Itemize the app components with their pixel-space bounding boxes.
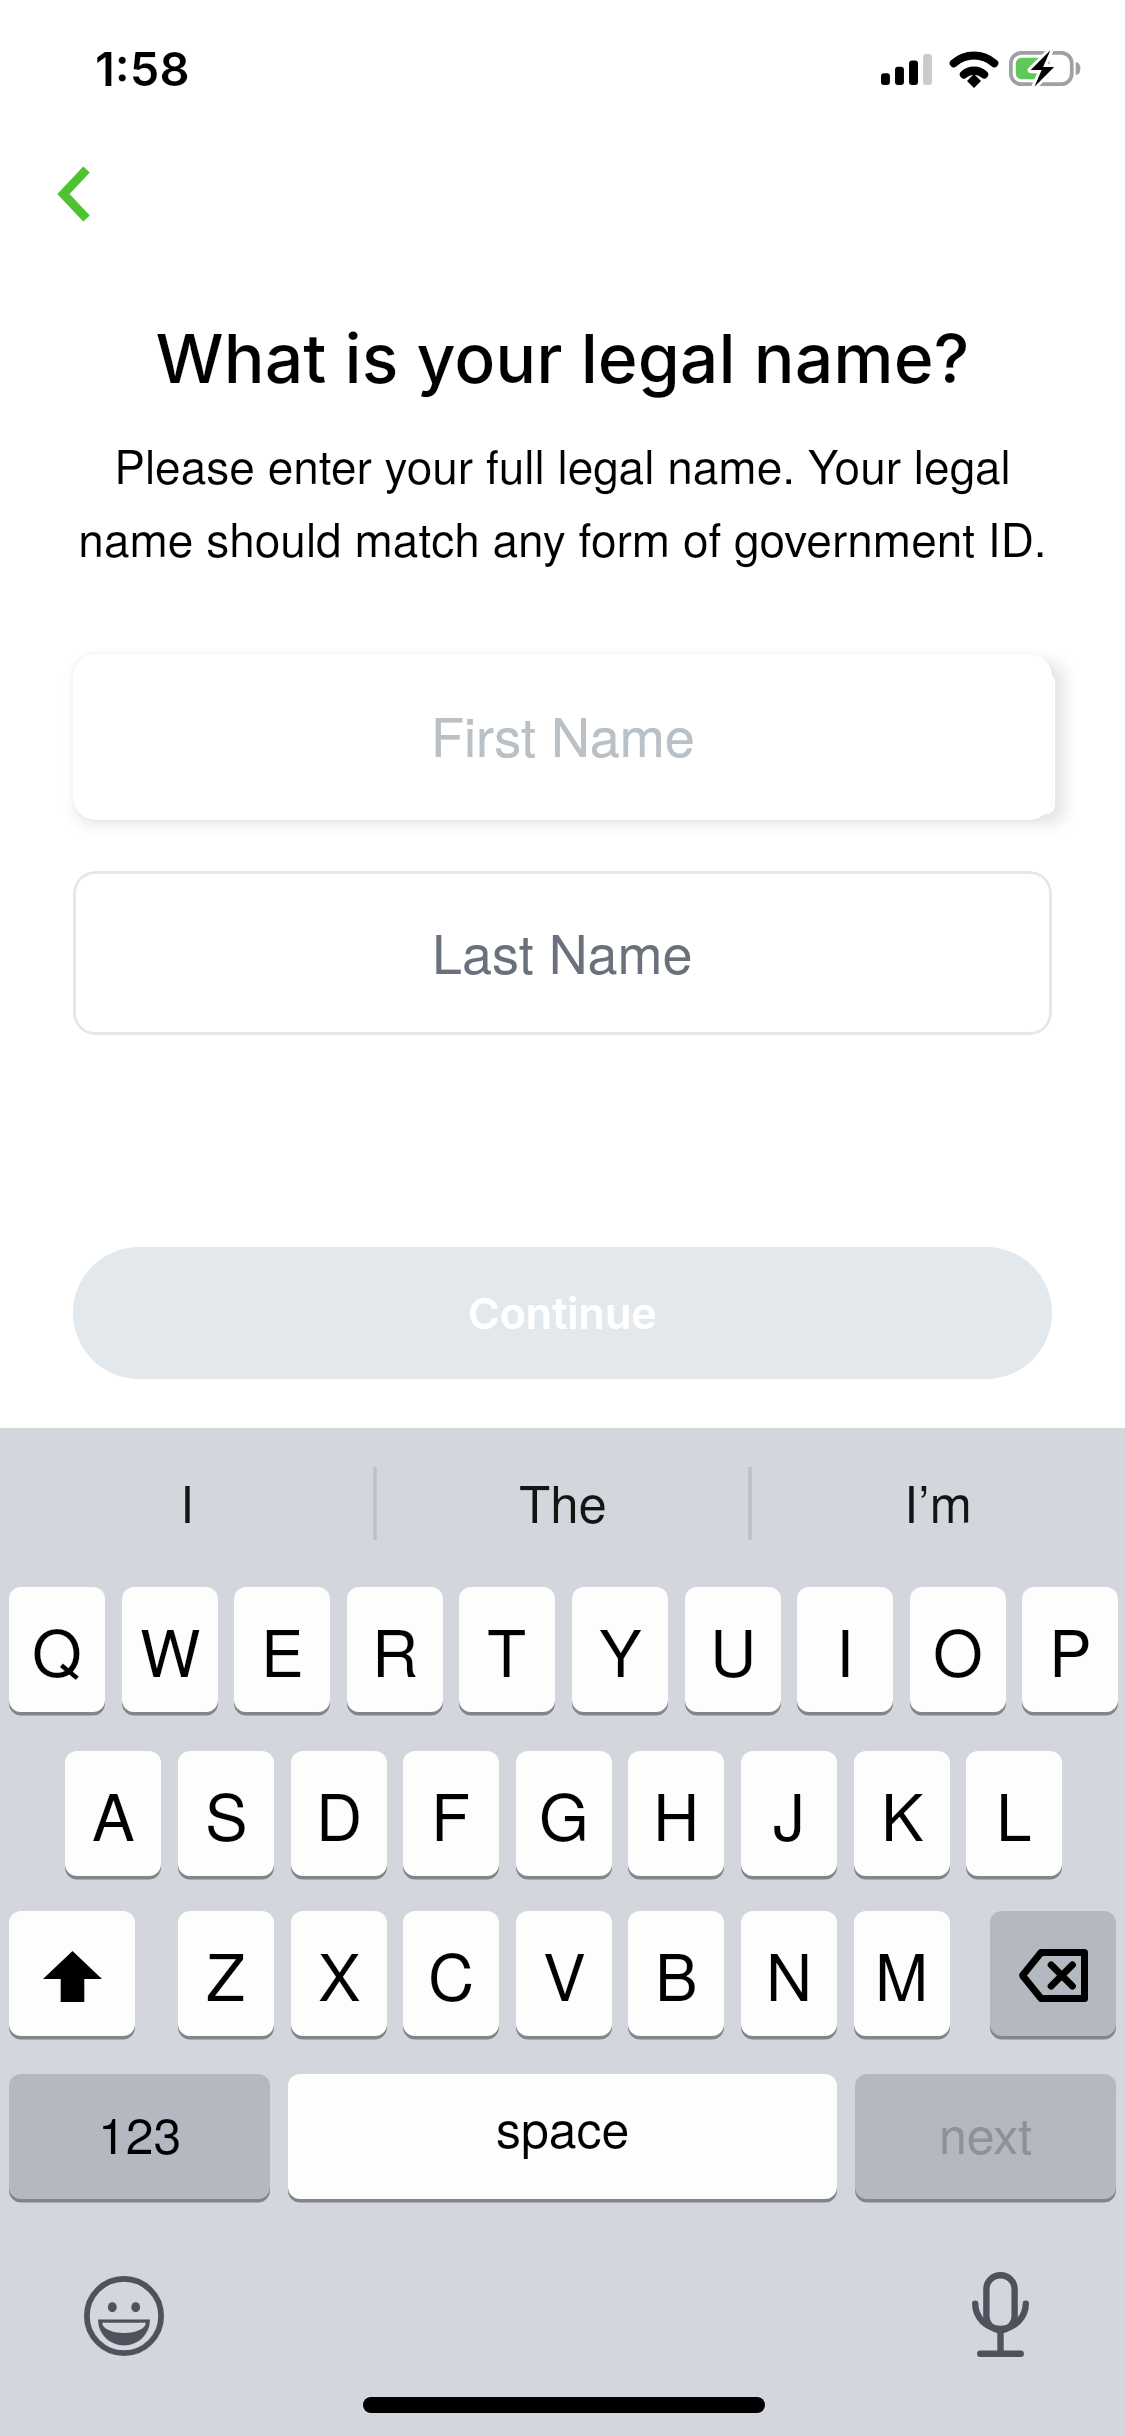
button[interactable]: U: [685, 1587, 781, 1712]
button[interactable]: The: [375, 1428, 750, 1560]
staticText: K: [881, 1768, 924, 1860]
button[interactable]: Z: [178, 1911, 274, 2036]
button[interactable]: D: [291, 1751, 387, 1876]
button[interactable]: B: [628, 1911, 724, 2036]
button[interactable]: O: [910, 1587, 1006, 1712]
staticText: S: [205, 1768, 248, 1860]
staticText: next: [939, 2097, 1033, 2169]
button[interactable]: P: [1022, 1587, 1118, 1712]
button[interactable]: K: [854, 1751, 950, 1876]
button[interactable]: Y: [572, 1587, 668, 1712]
button[interactable]: I: [797, 1587, 893, 1712]
staticText: H: [653, 1768, 700, 1860]
staticText: J: [773, 1768, 805, 1860]
button[interactable]: T: [459, 1587, 555, 1712]
button[interactable]: space: [288, 2074, 837, 2199]
staticText: Y: [599, 1604, 642, 1696]
staticText: E: [261, 1604, 304, 1696]
staticText: N: [766, 1928, 813, 2020]
button[interactable]: Shift: [9, 1911, 135, 2036]
button[interactable]: V: [516, 1911, 612, 2036]
staticText: 123: [98, 2097, 182, 2169]
staticText: W: [140, 1604, 201, 1696]
staticText: Please enter your full legal name. Your …: [60, 431, 1065, 570]
button[interactable]: J: [741, 1751, 837, 1876]
staticText: R: [372, 1604, 419, 1696]
staticText: U: [710, 1604, 757, 1696]
button[interactable]: Continue: [73, 1247, 1052, 1379]
button[interactable]: H: [628, 1751, 724, 1876]
button[interactable]: A: [65, 1751, 161, 1876]
button[interactable]: F: [403, 1751, 499, 1876]
button[interactable]: 123: [9, 2074, 270, 2199]
button[interactable]: R: [347, 1587, 443, 1712]
button[interactable]: E: [234, 1587, 330, 1712]
staticText: Q: [32, 1604, 82, 1696]
staticText: 1:58: [95, 40, 190, 97]
button[interactable]: Q: [9, 1587, 105, 1712]
staticText: B: [655, 1928, 698, 2020]
button[interactable]: L: [966, 1751, 1062, 1876]
staticText: Continue: [468, 1287, 657, 1339]
button[interactable]: I’m: [750, 1428, 1125, 1560]
button[interactable]: Back: [26, 146, 124, 242]
staticText: Z: [206, 1928, 246, 2020]
staticText: What is your legal name?: [30, 317, 1095, 399]
staticText: The: [519, 1464, 607, 1537]
staticText: space: [496, 2091, 630, 2163]
staticText: I: [836, 1604, 854, 1696]
staticText: First Name: [431, 695, 695, 772]
staticText: M: [875, 1928, 929, 2020]
staticText: X: [318, 1928, 361, 2020]
button[interactable]: G: [516, 1751, 612, 1876]
staticText: G: [539, 1768, 589, 1860]
button[interactable]: C: [403, 1911, 499, 2036]
button[interactable]: next: [855, 2074, 1116, 2199]
staticText: Last Name: [432, 912, 693, 989]
button[interactable]: Emoji keyboard: [74, 2266, 174, 2366]
staticText: O: [933, 1604, 983, 1696]
button[interactable]: S: [178, 1751, 274, 1876]
button[interactable]: First Name: [73, 654, 1052, 820]
button[interactable]: I: [0, 1428, 375, 1560]
staticText: F: [431, 1768, 471, 1860]
staticText: D: [316, 1768, 363, 1860]
button[interactable]: Last Name: [73, 871, 1052, 1035]
button[interactable]: N: [741, 1911, 837, 2036]
staticText: C: [428, 1928, 475, 2020]
staticText: A: [92, 1768, 135, 1860]
button[interactable]: Dictation: [950, 2264, 1050, 2364]
staticText: I: [180, 1464, 195, 1537]
staticText: L: [996, 1768, 1032, 1860]
staticText: I’m: [904, 1464, 972, 1537]
button[interactable]: M: [854, 1911, 950, 2036]
staticText: P: [1049, 1604, 1092, 1696]
staticText: V: [543, 1928, 586, 2020]
staticText: T: [487, 1604, 527, 1696]
button[interactable]: Backspace: [990, 1911, 1116, 2036]
button[interactable]: X: [291, 1911, 387, 2036]
button[interactable]: W: [122, 1587, 218, 1712]
